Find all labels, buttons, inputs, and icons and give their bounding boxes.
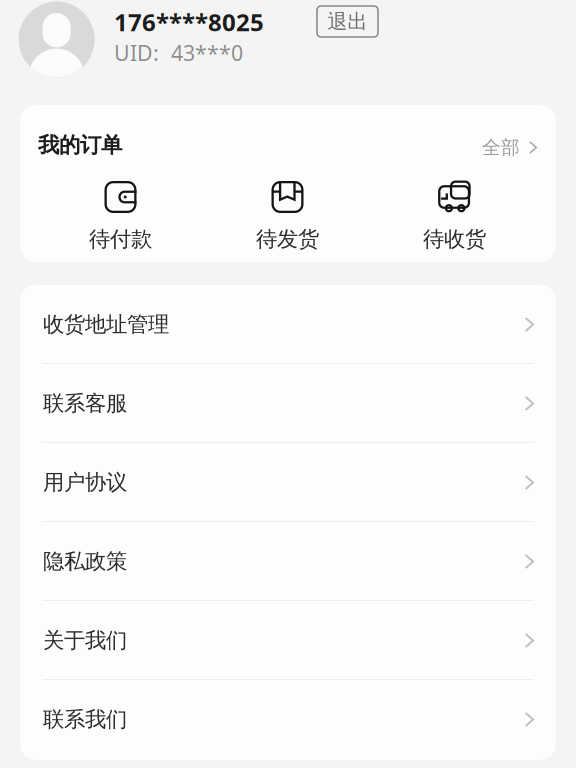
staticText: 待发货 [256, 226, 319, 252]
button[interactable]: 待收货 [371, 181, 538, 248]
staticText: UID: 43***0 [114, 38, 243, 67]
staticText: 关于我们 [43, 627, 127, 654]
button[interactable]: 联系客服 [20, 364, 556, 443]
staticText: 待收货 [423, 226, 486, 252]
button[interactable]: 隐私政策 [20, 522, 556, 601]
button[interactable]: 收货地址管理 [20, 285, 556, 364]
button[interactable]: 退出 [317, 6, 378, 37]
staticText: 176****8025 [114, 6, 264, 38]
staticText: 我的订单 [38, 132, 122, 158]
button[interactable]: 用户协议 [20, 443, 556, 522]
staticText: 待付款 [89, 226, 152, 252]
button[interactable]: 关于我们 [20, 601, 556, 680]
staticText: 联系客服 [43, 390, 127, 417]
button[interactable]: 待付款 [37, 181, 204, 248]
staticText: 收货地址管理 [43, 311, 169, 338]
button[interactable]: 联系我们 [20, 680, 556, 759]
button[interactable]: 全部 [482, 136, 537, 159]
staticText: 退出 [327, 9, 367, 34]
staticText: 用户协议 [43, 469, 127, 496]
staticText: 隐私政策 [43, 548, 127, 575]
staticText: 联系我们 [43, 706, 127, 733]
button[interactable]: 待发货 [204, 181, 371, 248]
staticText: 全部 [482, 136, 520, 159]
